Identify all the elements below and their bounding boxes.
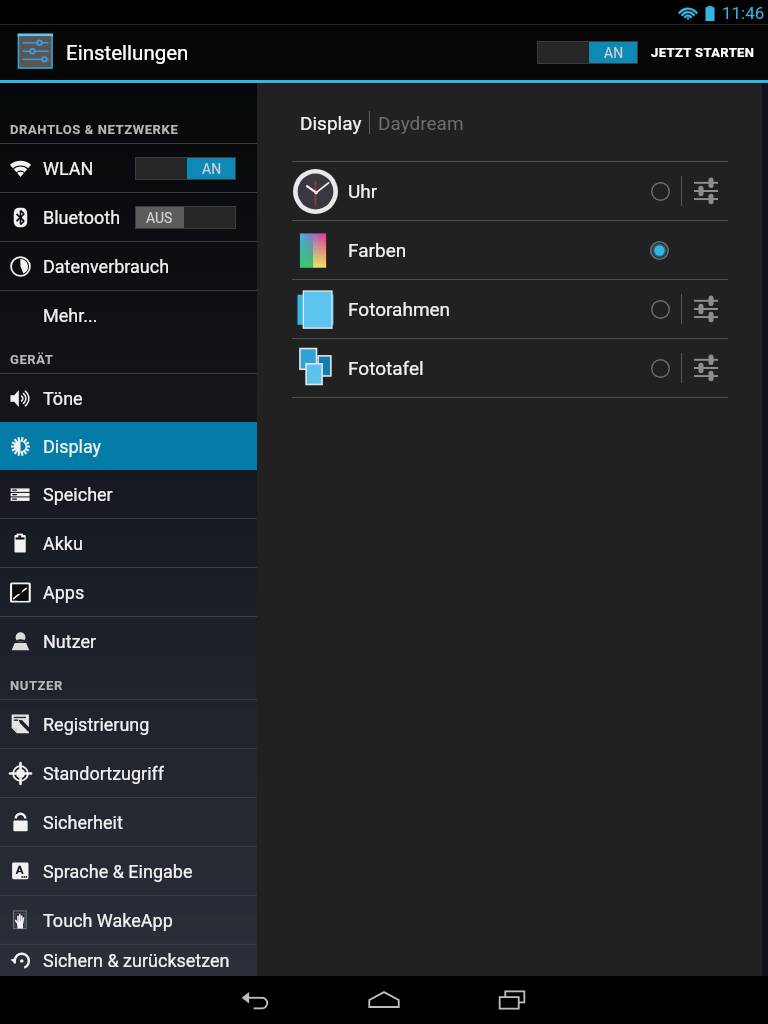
button[interactable]: Daydream: [378, 112, 464, 134]
staticText: Mehr...: [43, 305, 98, 326]
staticText: GERÄT: [10, 352, 54, 367]
button[interactable]: Einstellungen: [15, 31, 189, 75]
button[interactable]: Sprache & Eingabe: [0, 847, 257, 895]
button[interactable]: Mehr...: [0, 291, 257, 339]
button[interactable]: Datenverbrauch: [0, 242, 257, 290]
button[interactable]: Töne: [0, 374, 257, 422]
staticText: Farben: [348, 239, 407, 261]
button[interactable]: Farben: [257, 221, 762, 279]
button[interactable]: Nutzer: [0, 617, 257, 665]
button[interactable]: Home: [360, 976, 408, 1024]
staticText: WLAN: [43, 158, 94, 179]
staticText: Standortzugriff: [43, 763, 165, 784]
staticText: Nutzer: [43, 631, 97, 652]
staticText: Registrierung: [43, 714, 150, 735]
staticText: AUS: [146, 210, 173, 226]
staticText: Apps: [43, 582, 85, 603]
button[interactable]: Uhr: [257, 162, 762, 220]
button[interactable]: WLAN: [0, 144, 257, 192]
button[interactable]: Display: [300, 112, 362, 134]
button[interactable]: Settings for Uhr: [694, 178, 718, 204]
staticText: Töne: [43, 388, 83, 409]
staticText: Sichern & zurücksetzen: [43, 950, 230, 971]
button[interactable]: Select Fototafel: [642, 350, 678, 386]
button[interactable]: Select Uhr: [642, 173, 678, 209]
staticText: 11:46: [722, 3, 765, 23]
button[interactable]: AN: [537, 41, 638, 64]
staticText: AN: [202, 161, 222, 177]
staticText: Datenverbrauch: [43, 256, 170, 277]
staticText: NUTZER: [10, 678, 63, 693]
staticText: Bluetooth: [43, 207, 121, 228]
button[interactable]: Back: [232, 976, 280, 1024]
button[interactable]: Settings for Fotorahmen: [694, 296, 718, 322]
staticText: Fotorahmen: [348, 298, 451, 320]
button[interactable]: Touch WakeApp: [0, 896, 257, 944]
staticText: Sicherheit: [43, 812, 123, 833]
staticText: Display: [300, 112, 362, 134]
button[interactable]: Settings for Fototafel: [694, 355, 718, 381]
button[interactable]: JETZT STARTEN: [638, 45, 768, 60]
staticText: JETZT STARTEN: [651, 45, 755, 60]
staticText: Touch WakeApp: [43, 910, 173, 931]
button[interactable]: Apps: [0, 568, 257, 616]
staticText: Sprache & Eingabe: [43, 861, 193, 882]
button[interactable]: Bluetooth: [0, 193, 257, 241]
button[interactable]: Recents: [488, 976, 536, 1024]
button[interactable]: AN: [135, 157, 236, 180]
staticText: Daydream: [378, 112, 464, 134]
button[interactable]: Fototafel: [257, 339, 762, 397]
staticText: Einstellungen: [66, 41, 189, 65]
button[interactable]: Display: [0, 422, 257, 470]
staticText: AN: [604, 45, 624, 61]
button[interactable]: Select Fotorahmen: [642, 291, 678, 327]
button[interactable]: Speicher: [0, 470, 257, 518]
button[interactable]: Registrierung: [0, 700, 257, 748]
staticText: Fototafel: [348, 357, 424, 379]
staticText: Speicher: [43, 484, 113, 505]
button[interactable]: Sicherheit: [0, 798, 257, 846]
staticText: DRAHTLOS & NETZWERKE: [10, 122, 179, 137]
staticText: Uhr: [348, 180, 378, 202]
button[interactable]: Fotorahmen: [257, 280, 762, 338]
button[interactable]: Standortzugriff: [0, 749, 257, 797]
button[interactable]: Select Farben: [641, 232, 677, 268]
button[interactable]: Sichern & zurücksetzen: [0, 945, 257, 976]
button[interactable]: AUS: [135, 206, 236, 229]
button[interactable]: Akku: [0, 519, 257, 567]
staticText: Display: [43, 436, 102, 457]
staticText: Akku: [43, 533, 83, 554]
